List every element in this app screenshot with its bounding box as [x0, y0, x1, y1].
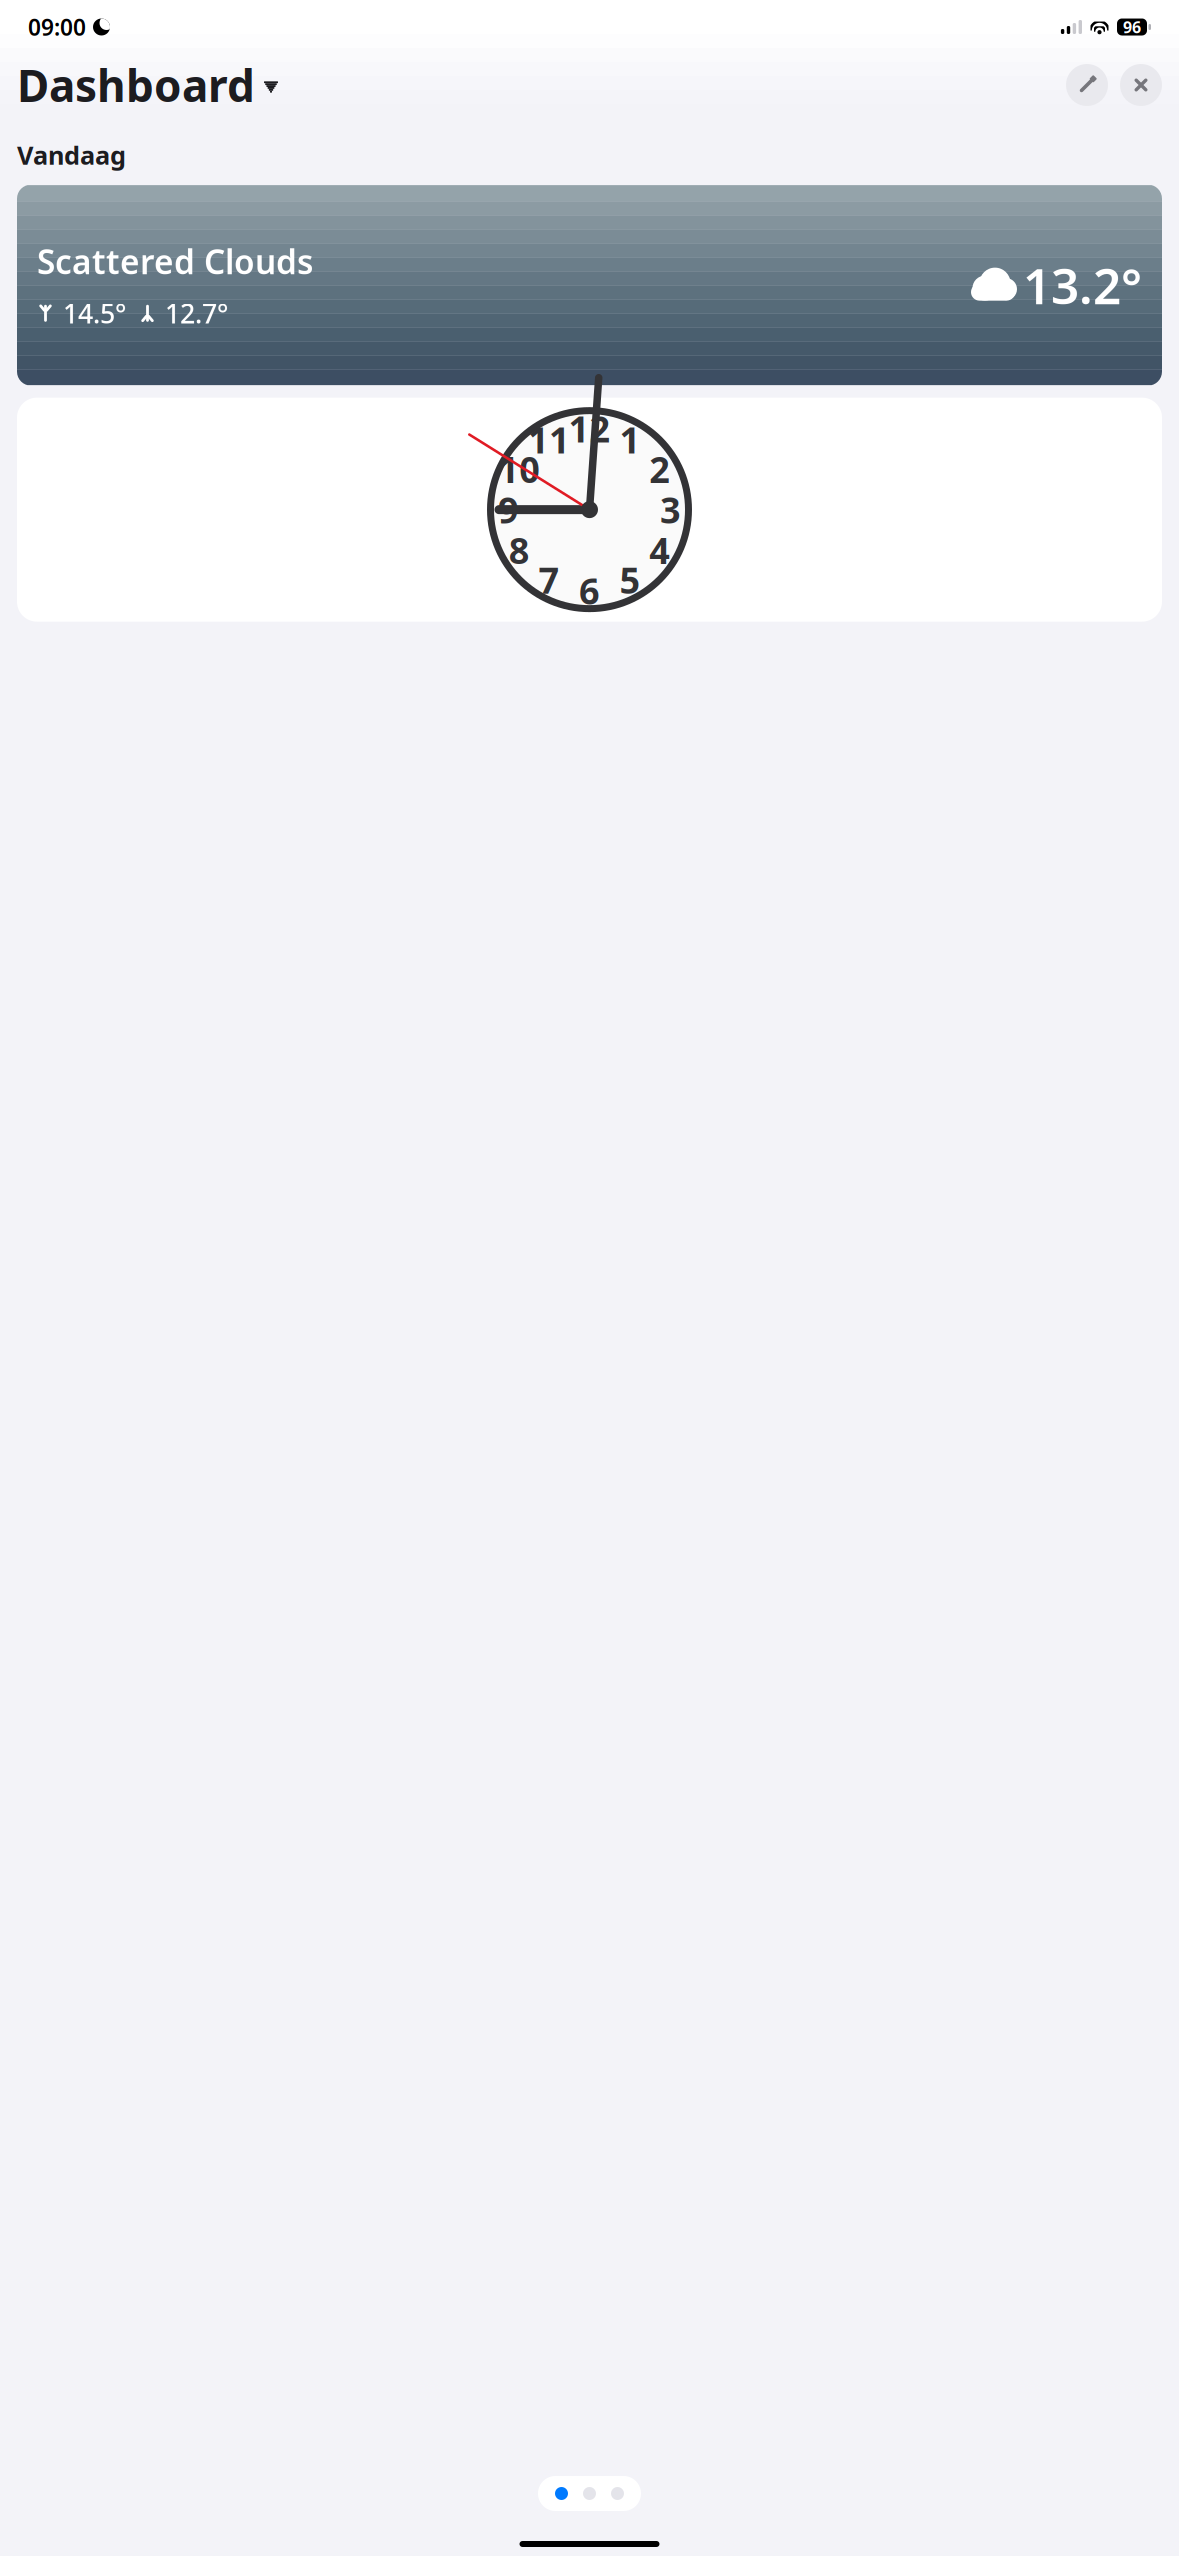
staticText: 5 [619, 556, 640, 604]
button[interactable]: Dashboard [17, 52, 278, 118]
button[interactable]: Close [1120, 64, 1162, 106]
staticText: 14.5° [63, 296, 126, 331]
staticText: 09:00 [28, 12, 86, 42]
staticText: 4 [649, 526, 670, 574]
staticText: Vandaag [17, 138, 126, 172]
staticText: 7 [538, 556, 559, 604]
button[interactable]: Edit [1066, 64, 1108, 106]
button[interactable]: 12 [17, 398, 1162, 622]
staticText: 96 [1123, 16, 1141, 38]
staticText: 10 [498, 445, 540, 493]
staticText: 8 [509, 526, 530, 574]
staticText: 1 [619, 416, 640, 463]
staticText: 9 [498, 486, 519, 533]
staticText: 2 [649, 445, 670, 493]
staticText: 3 [660, 486, 681, 533]
staticText: Dashboard [17, 56, 255, 114]
staticText: 12 [568, 405, 610, 452]
button[interactable]: Scattered Clouds [17, 185, 1162, 386]
staticText: 6 [579, 567, 600, 614]
staticText: 13.2° [1023, 252, 1142, 318]
staticText: 12.7° [165, 296, 228, 331]
staticText: 11 [528, 416, 570, 463]
staticText: Scattered Clouds [37, 239, 313, 284]
